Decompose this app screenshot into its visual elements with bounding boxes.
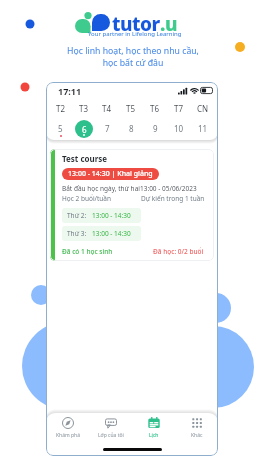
staticText: 5: [58, 123, 63, 134]
button[interactable]: Lớp của tôi: [89, 413, 132, 443]
staticText: Dự kiến trong 1 tuần: [141, 194, 205, 203]
staticText: Học linh hoạt, học theo nhu cầu, học bất…: [67, 45, 199, 69]
staticText: 7: [105, 123, 110, 134]
staticText: T4: [102, 103, 112, 114]
staticText: 9: [153, 123, 158, 134]
staticText: 11: [198, 123, 208, 134]
button[interactable]: 8: [119, 117, 143, 140]
staticText: T5: [126, 103, 136, 114]
staticText: 13:00 - 14:30: [92, 229, 131, 238]
staticText: 10: [174, 123, 184, 134]
staticText: 6: [82, 124, 87, 135]
staticText: 13:00 - 14:30: [92, 211, 131, 220]
staticText: 8: [129, 123, 134, 134]
button[interactable]: 5: [49, 117, 72, 140]
button[interactable]: Khác: [175, 413, 218, 443]
staticText: Đã học: 0/2 buổi: [153, 247, 204, 256]
staticText: Lịch: [149, 432, 159, 439]
staticText: T6: [150, 103, 160, 114]
staticText: T2: [56, 103, 66, 114]
staticText: Khám phá: [56, 432, 80, 439]
button[interactable]: Khám phá: [46, 413, 89, 443]
button[interactable]: Lịch: [132, 413, 175, 443]
staticText: Thứ 2:: [67, 211, 87, 220]
staticText: CN: [197, 103, 209, 114]
staticText: Bắt đầu học ngày, thứ hai13:00 - 05/06/2…: [62, 184, 197, 193]
staticText: Học 2 buổi/tuần: [62, 194, 112, 203]
staticText: T7: [174, 103, 184, 114]
staticText: Khác: [191, 432, 203, 439]
staticText: 13:00 - 14:30 | Khai giảng: [68, 169, 153, 179]
button[interactable]: 7: [95, 117, 119, 140]
staticText: Test course: [62, 153, 108, 164]
staticText: .u: [160, 11, 177, 37]
button[interactable]: 11: [191, 117, 215, 140]
staticText: Your partner in Lifelong Learning: [88, 30, 182, 38]
staticText: Thứ 3:: [67, 229, 87, 238]
staticText: 17:11: [58, 85, 82, 97]
button[interactable]: 6: [72, 117, 95, 140]
staticText: Lớp của tôi: [98, 432, 124, 439]
button[interactable]: Test course: [50, 149, 214, 261]
staticText: tutor: [112, 11, 160, 37]
staticText: T3: [79, 103, 89, 114]
button[interactable]: 10: [167, 117, 191, 140]
button[interactable]: 9: [143, 117, 167, 140]
staticText: Đã có 1 học sinh: [62, 247, 113, 256]
